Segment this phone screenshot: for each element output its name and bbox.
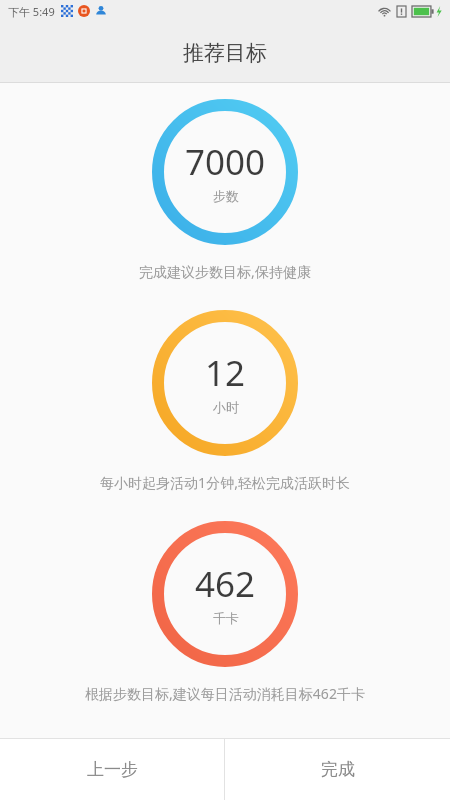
button[interactable]: 完成: [225, 739, 450, 800]
staticText: 下午 5:49: [8, 4, 55, 19]
staticText: 推荐目标: [183, 40, 267, 66]
staticText: 上一步: [87, 759, 138, 780]
staticText: 完成建议步数目标,保持健康: [139, 262, 311, 281]
staticText: 12: [205, 349, 246, 397]
staticText: 小时: [213, 399, 239, 415]
staticText: 7000: [185, 138, 266, 186]
staticText: 根据步数目标,建议每日活动消耗目标462千卡: [85, 684, 365, 703]
button[interactable]: 上一步: [0, 739, 224, 800]
staticText: 千卡: [213, 610, 239, 626]
staticText: 每小时起身活动1分钟,轻松完成活跃时长: [100, 473, 350, 492]
staticText: 462: [195, 560, 256, 608]
staticText: 完成: [321, 759, 355, 780]
staticText: 步数: [213, 188, 239, 204]
